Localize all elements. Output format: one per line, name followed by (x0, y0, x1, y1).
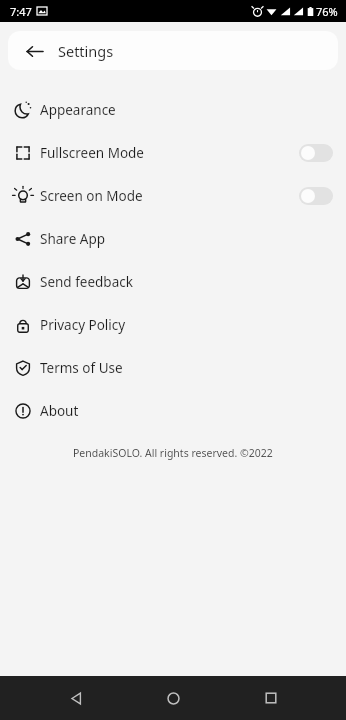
button[interactable]: Back (8, 31, 338, 70)
staticText: Appearance (40, 101, 116, 119)
button[interactable]: Fullscreen Mode (0, 131, 346, 174)
staticText: Privacy Policy (40, 316, 126, 334)
button[interactable]: Privacy Policy (0, 303, 346, 346)
button[interactable]: About (0, 389, 346, 432)
button[interactable]: Home (151, 676, 195, 720)
button[interactable]: Share App (0, 217, 346, 260)
button[interactable]: Back (22, 39, 46, 63)
button[interactable]: Fullscreen Mode toggle (299, 144, 333, 162)
button[interactable]: Terms of Use (0, 346, 346, 389)
staticText: Screen on Mode (40, 187, 143, 205)
button[interactable]: Send feedback (0, 260, 346, 303)
staticText: 76% (316, 4, 338, 19)
staticText: PendakiSOLO. All rights reserved. ©2022 (73, 446, 273, 460)
staticText: Settings (58, 41, 114, 61)
staticText: Fullscreen Mode (40, 144, 144, 162)
staticText: Share App (40, 230, 105, 248)
staticText: 7:47 (10, 4, 32, 19)
button[interactable]: Appearance (0, 88, 346, 131)
button[interactable]: Back (54, 676, 98, 720)
button[interactable]: Screen on Mode toggle (299, 187, 333, 205)
button[interactable]: Recent apps (249, 676, 293, 720)
button[interactable]: Screen on Mode (0, 174, 346, 217)
staticText: About (40, 402, 79, 420)
staticText: Terms of Use (40, 359, 123, 377)
staticText: Send feedback (40, 273, 133, 291)
